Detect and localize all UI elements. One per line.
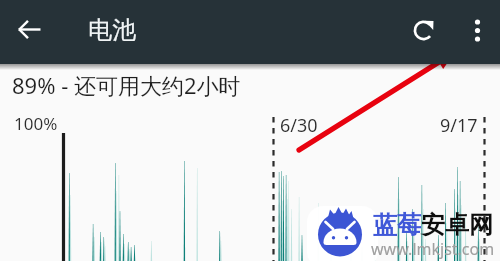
staticText: 电池	[88, 15, 136, 45]
button[interactable]: More options	[457, 10, 498, 51]
staticText: www.lmkjst.com	[371, 238, 495, 260]
staticText: 100%	[14, 112, 58, 135]
button[interactable]: Refresh	[403, 10, 444, 51]
staticText: 89% - 还可用大约2小时	[12, 70, 241, 100]
button[interactable]: Back	[9, 9, 50, 50]
staticText: 安卓网	[421, 210, 493, 240]
staticText: 蓝莓	[373, 210, 421, 240]
staticText: 6/30	[280, 113, 318, 138]
staticText: 9/17	[440, 113, 478, 138]
